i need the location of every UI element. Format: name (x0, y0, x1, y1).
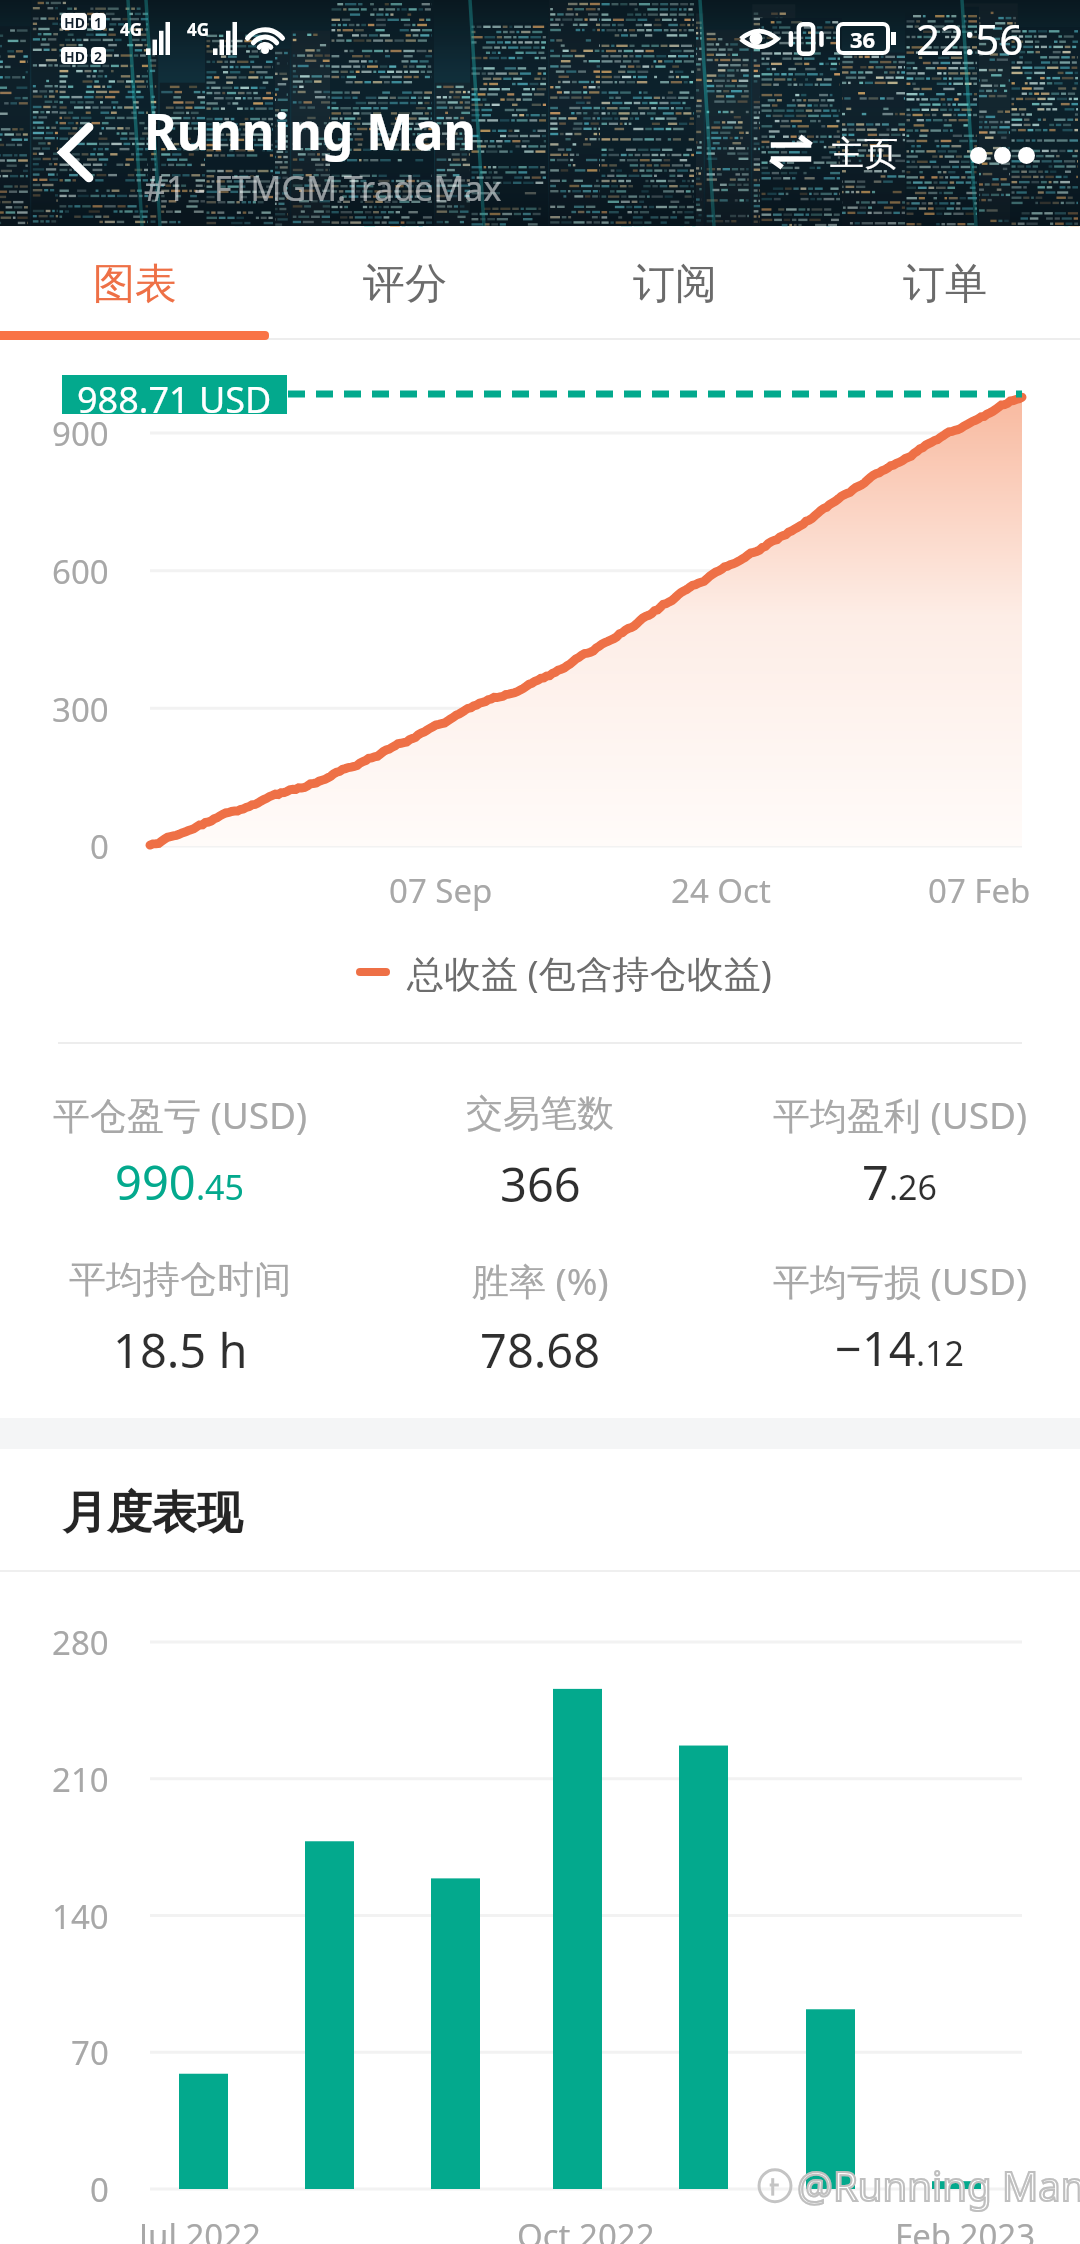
staticText: 平仓盈亏 (USD) (53, 1089, 308, 1137)
staticText: 2 (94, 47, 103, 64)
button[interactable]: Back (22, 109, 106, 193)
button[interactable]: 平仓盈亏 (USD) (0, 1089, 360, 1229)
staticText: @Running Man (797, 2158, 1080, 2212)
staticText: 平均持仓时间 (69, 1256, 291, 1303)
staticText: Feb 2023 (895, 2213, 1036, 2244)
staticText: 月度表现 (62, 1485, 242, 1542)
staticText: .12 (916, 1330, 965, 1376)
staticText: 18.5 h (113, 1318, 248, 1374)
staticText: HD (64, 47, 85, 64)
staticText: 评分 (363, 258, 447, 311)
staticText: 7 (862, 1150, 889, 1206)
staticText: 订单 (903, 258, 987, 311)
staticText: HD (64, 13, 85, 30)
staticText: 36 (850, 24, 876, 53)
staticText: −14 (835, 1316, 916, 1372)
staticText: #1 - FTMGM.TradeMax (144, 165, 502, 211)
button[interactable]: 订单 (810, 231, 1080, 337)
staticText: 900 (52, 411, 109, 456)
staticText: 4G (187, 18, 210, 41)
button[interactable]: 交易笔数 (360, 1089, 720, 1229)
staticText: 24 Oct (671, 868, 771, 913)
button[interactable]: 总收益 (包含持仓收益) (0, 929, 1080, 1015)
staticText: 交易笔数 (466, 1090, 614, 1137)
staticText: Oct 2022 (517, 2213, 655, 2244)
staticText: 胜率 (%) (472, 1255, 609, 1303)
staticText: 990 (115, 1150, 196, 1206)
staticText: 366 (500, 1152, 581, 1208)
button[interactable]: 主页 (767, 120, 900, 183)
staticText: @Running Man (797, 2158, 1080, 2212)
staticText: 78.68 (480, 1318, 601, 1374)
staticText: 300 (52, 687, 109, 732)
staticText: 70 (71, 2030, 109, 2075)
staticText: 600 (52, 549, 109, 594)
staticText: 07 Feb (928, 868, 1031, 913)
staticText: 07 Sep (389, 868, 493, 913)
staticText: 210 (52, 1757, 109, 1802)
button[interactable]: More options (962, 135, 1043, 168)
staticText: .26 (889, 1164, 938, 1210)
button[interactable]: 平均持仓时间 (0, 1255, 360, 1395)
staticText: 988.71 USD (77, 375, 272, 414)
staticText: 图表 (93, 258, 177, 311)
staticText: Running Man (144, 97, 476, 165)
button[interactable]: 图表 (0, 231, 270, 337)
staticText: .45 (196, 1164, 245, 1210)
staticText: 140 (52, 1894, 109, 1939)
staticText: 1 (94, 13, 103, 30)
staticText: 22:56 (916, 10, 1024, 67)
staticText: 平均盈利 (USD) (773, 1089, 1028, 1137)
button[interactable]: 评分 (270, 231, 540, 337)
staticText: 总收益 (包含持仓收益) (407, 947, 772, 998)
staticText: 0 (90, 824, 109, 869)
staticText: Jul 2022 (139, 2213, 262, 2244)
staticText: 订阅 (633, 258, 717, 311)
button[interactable]: 平均亏损 (USD) (720, 1255, 1080, 1395)
staticText: 主页 (830, 132, 898, 175)
staticText: 0 (90, 2167, 109, 2212)
staticText: 4G (120, 18, 143, 41)
button[interactable]: 平均盈利 (USD) (720, 1089, 1080, 1229)
staticText: 280 (52, 1620, 109, 1665)
button[interactable]: 胜率 (%) (360, 1255, 720, 1395)
button[interactable]: 订阅 (540, 231, 810, 337)
staticText: 平均亏损 (USD) (773, 1255, 1028, 1303)
